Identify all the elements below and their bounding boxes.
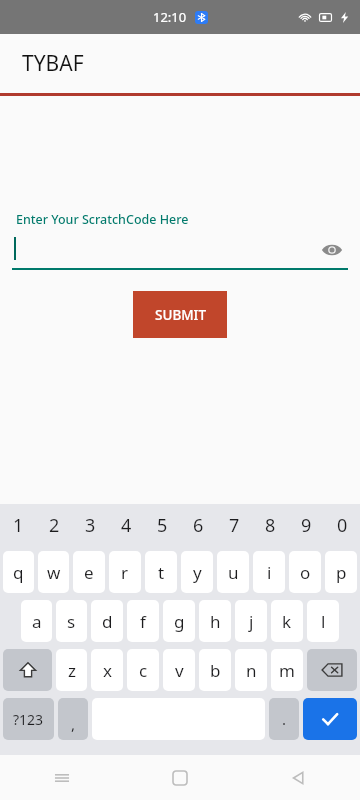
staticText: s bbox=[67, 610, 76, 633]
button[interactable]: p bbox=[325, 551, 357, 593]
staticText: y bbox=[193, 561, 202, 584]
button[interactable]: 4 bbox=[108, 504, 144, 546]
button[interactable]: u bbox=[217, 551, 249, 593]
staticText: 9 bbox=[301, 513, 312, 538]
staticText: j bbox=[249, 610, 254, 633]
button[interactable]: w bbox=[38, 551, 69, 593]
button[interactable]: b bbox=[199, 649, 231, 691]
button[interactable]: a bbox=[21, 600, 52, 642]
button[interactable]: l bbox=[307, 600, 339, 642]
staticText: r bbox=[121, 561, 129, 584]
staticText: 8 bbox=[265, 513, 276, 538]
button[interactable]: x bbox=[91, 649, 123, 691]
button[interactable]: o bbox=[289, 551, 321, 593]
staticText: e bbox=[84, 561, 94, 584]
staticText: g bbox=[174, 610, 185, 633]
button[interactable]: q bbox=[3, 551, 34, 593]
button[interactable]: 0 bbox=[324, 504, 360, 546]
staticText: a bbox=[32, 610, 42, 633]
staticText: w bbox=[47, 561, 61, 584]
button[interactable]: 3 bbox=[72, 504, 108, 546]
button[interactable]: g bbox=[163, 600, 195, 642]
staticText: d bbox=[102, 610, 113, 633]
staticText: 12:10 bbox=[153, 8, 187, 26]
button[interactable]: . bbox=[269, 698, 299, 740]
button[interactable]: ?123 bbox=[3, 698, 54, 740]
button[interactable]: c bbox=[127, 649, 159, 691]
staticText: p bbox=[336, 561, 347, 584]
staticText: SUBMIT bbox=[155, 306, 206, 324]
staticText: f bbox=[140, 610, 146, 633]
staticText: TYBAF bbox=[22, 49, 84, 78]
staticText: 1 bbox=[13, 513, 24, 538]
button[interactable]: SUBMIT bbox=[133, 291, 227, 338]
staticText: 2 bbox=[49, 513, 60, 538]
button[interactable]: i bbox=[253, 551, 285, 593]
button[interactable]: j bbox=[235, 600, 267, 642]
staticText: 0 bbox=[337, 513, 348, 538]
staticText: Enter Your ScratchCode Here bbox=[16, 211, 189, 228]
staticText: n bbox=[246, 659, 257, 682]
button[interactable]: Back bbox=[276, 756, 320, 800]
button[interactable]: 8 bbox=[252, 504, 288, 546]
button[interactable]: 9 bbox=[288, 504, 324, 546]
button[interactable]: 7 bbox=[216, 504, 252, 546]
staticText: , bbox=[71, 714, 76, 734]
button[interactable]: Home bbox=[158, 756, 202, 800]
button[interactable]: d bbox=[91, 600, 123, 642]
button[interactable]: Recent apps bbox=[40, 756, 84, 800]
staticText: 6 bbox=[193, 513, 204, 538]
staticText: ?123 bbox=[13, 710, 44, 729]
staticText: k bbox=[282, 610, 292, 633]
staticText: x bbox=[103, 659, 112, 682]
button[interactable]: v bbox=[163, 649, 195, 691]
staticText: h bbox=[210, 610, 221, 633]
staticText: z bbox=[68, 659, 76, 682]
button[interactable]: 1 bbox=[0, 504, 36, 546]
button[interactable]: Shift bbox=[3, 649, 52, 691]
button[interactable]: r bbox=[109, 551, 141, 593]
button[interactable]: e bbox=[73, 551, 105, 593]
staticText: 3 bbox=[85, 513, 96, 538]
staticText: t bbox=[158, 561, 165, 584]
button[interactable]: y bbox=[181, 551, 213, 593]
button[interactable]: Enter bbox=[303, 698, 357, 740]
button[interactable]: z bbox=[56, 649, 87, 691]
staticText: u bbox=[228, 561, 239, 584]
staticText: i bbox=[267, 561, 272, 584]
staticText: v bbox=[175, 659, 184, 682]
button[interactable]: s bbox=[56, 600, 87, 642]
staticText: q bbox=[13, 561, 24, 584]
staticText: . bbox=[282, 709, 287, 729]
button[interactable]: Toggle password visibility bbox=[318, 236, 346, 264]
button[interactable]: t bbox=[145, 551, 177, 593]
button[interactable]: 5 bbox=[144, 504, 180, 546]
button[interactable]: 2 bbox=[36, 504, 72, 546]
staticText: l bbox=[321, 610, 326, 633]
button[interactable]: f bbox=[127, 600, 159, 642]
button[interactable]: h bbox=[199, 600, 231, 642]
button[interactable]: m bbox=[271, 649, 303, 691]
button[interactable]: 6 bbox=[180, 504, 216, 546]
staticText: c bbox=[139, 659, 148, 682]
staticText: b bbox=[210, 659, 221, 682]
staticText: 4 bbox=[121, 513, 132, 538]
button[interactable]: Backspace bbox=[307, 649, 357, 691]
button[interactable]: k bbox=[271, 600, 303, 642]
staticText: o bbox=[300, 561, 311, 584]
button[interactable]: n bbox=[235, 649, 267, 691]
staticText: 5 bbox=[157, 513, 168, 538]
staticText: m bbox=[279, 659, 295, 682]
button[interactable]: , bbox=[58, 698, 88, 740]
staticText: 7 bbox=[229, 513, 240, 538]
